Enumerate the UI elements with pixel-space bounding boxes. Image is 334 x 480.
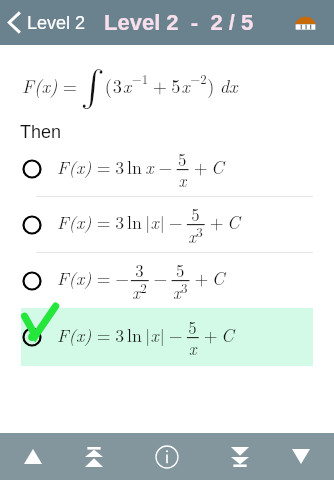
- staticText: Level 2 - 2 / 5: [104, 10, 254, 35]
- button[interactable]: Next question: [268, 433, 334, 480]
- button[interactable]: Information: [122, 433, 212, 480]
- button[interactable]: [21, 197, 313, 252]
- staticText: Then: [20, 122, 62, 142]
- button[interactable]: First question: [66, 433, 122, 480]
- button[interactable]: Level 2: [0, 3, 92, 42]
- button[interactable]: [21, 308, 313, 366]
- button[interactable]: Previous question: [0, 433, 66, 480]
- button[interactable]: Home: [289, 0, 321, 45]
- button[interactable]: Last question: [212, 433, 268, 480]
- button[interactable]: [21, 253, 313, 308]
- button[interactable]: [21, 141, 313, 196]
- staticText: Level 2: [27, 13, 86, 33]
